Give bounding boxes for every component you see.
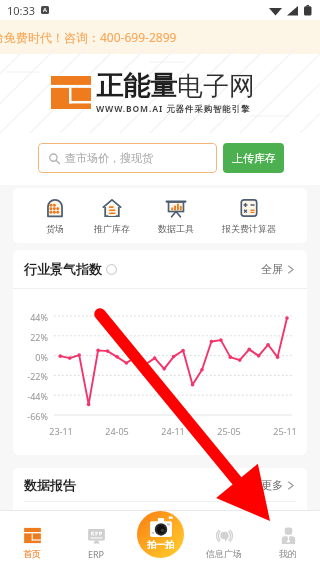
staticText: 数据报告: [24, 477, 76, 493]
staticText: 25-11: [268, 425, 302, 437]
staticText: 24-11: [156, 425, 190, 437]
staticText: 10:33: [7, 3, 36, 18]
button[interactable]: 更多: [259, 476, 296, 494]
staticText: 22%: [13, 331, 48, 343]
staticText: 正能量: [96, 69, 177, 103]
staticText: 44%: [13, 311, 48, 323]
staticText: 25-05: [212, 425, 246, 437]
staticText: -44%: [13, 390, 48, 402]
staticText: 23-11: [44, 425, 78, 437]
staticText: 全屏: [261, 262, 283, 276]
staticText: 上传库存: [232, 151, 276, 165]
staticText: -66%: [13, 410, 48, 422]
button[interactable]: 数据工具: [155, 195, 197, 236]
staticText: -22%: [13, 370, 48, 382]
staticText: WWW.BOM.AI 元器件采购智能引擎: [96, 103, 251, 115]
staticText: 货场: [46, 223, 64, 234]
button[interactable]: 查市场价，搜现货: [38, 143, 217, 173]
staticText: 更多: [261, 478, 283, 492]
button[interactable]: 首页: [0, 524, 64, 561]
staticText: 首页: [23, 548, 41, 559]
button[interactable]: 推广库存: [91, 195, 133, 236]
staticText: 信息广场: [206, 548, 242, 559]
staticText: 台免费时代！咨询：400-699-2899: [0, 29, 177, 45]
button[interactable]: 报关费计算器: [219, 195, 279, 236]
staticText: 查市场价，搜现货: [65, 151, 153, 165]
button[interactable]: 货场: [41, 195, 69, 236]
button[interactable]: ERP: [64, 524, 128, 562]
staticText: 数据工具: [158, 223, 194, 234]
button[interactable]: 拍一拍: [137, 511, 184, 558]
staticText: 推广库存: [94, 223, 130, 234]
button[interactable]: 上传库存: [223, 143, 284, 173]
staticText: 0%: [13, 351, 48, 363]
button[interactable]: 信息广场: [192, 524, 256, 561]
staticText: 行业景气指数: [24, 261, 102, 277]
staticText: ERP: [88, 548, 105, 560]
staticText: A: [43, 6, 47, 14]
button[interactable]: 我的: [256, 524, 320, 561]
button[interactable]: 全屏: [259, 260, 296, 278]
staticText: 我的: [279, 548, 297, 559]
staticText: 电子网: [177, 70, 255, 103]
staticText: 24-05: [100, 425, 134, 437]
staticText: 报关费计算器: [222, 223, 276, 234]
staticText: 拍一拍: [147, 539, 174, 550]
